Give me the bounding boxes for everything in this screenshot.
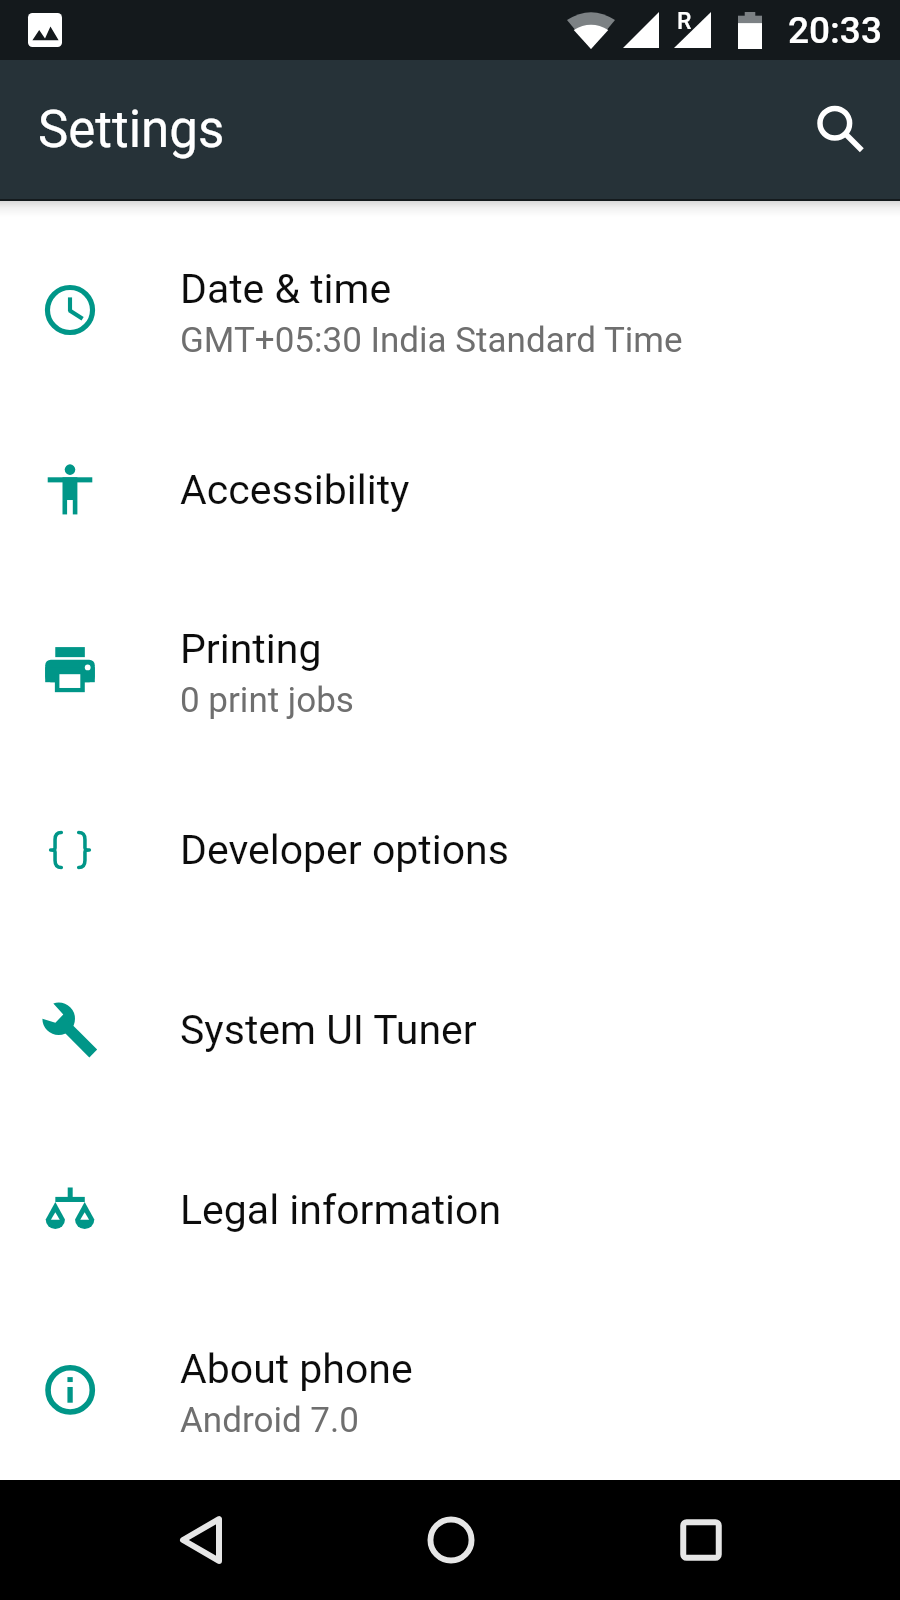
staticText: GMT+05:30 India Standard Time xyxy=(180,320,683,361)
staticText: Android 7.0 xyxy=(180,1400,359,1441)
staticText: 20:33 xyxy=(788,9,882,52)
button[interactable]: Recent apps xyxy=(656,1480,746,1600)
button[interactable]: Printing xyxy=(0,580,900,760)
staticText: Date & time xyxy=(180,265,392,313)
button[interactable]: Developer options xyxy=(0,760,900,940)
button[interactable]: System UI Tuner xyxy=(0,940,900,1120)
button[interactable]: About phone xyxy=(0,1300,900,1480)
staticText: About phone xyxy=(180,1345,413,1393)
staticText: 0 print jobs xyxy=(180,680,354,721)
button[interactable]: Search xyxy=(792,82,888,178)
staticText: Developer options xyxy=(180,826,509,874)
staticText: Accessibility xyxy=(180,466,410,514)
staticText: R xyxy=(677,8,692,35)
staticText: Printing xyxy=(180,625,322,673)
button[interactable]: Home xyxy=(406,1480,496,1600)
staticText: Settings xyxy=(38,100,225,160)
button[interactable]: Accessibility xyxy=(0,400,900,580)
button[interactable]: Legal information xyxy=(0,1120,900,1300)
button[interactable]: Back xyxy=(156,1480,246,1600)
button[interactable]: Date & time xyxy=(0,220,900,400)
staticText: Legal information xyxy=(180,1186,502,1234)
staticText: System UI Tuner xyxy=(180,1006,477,1054)
